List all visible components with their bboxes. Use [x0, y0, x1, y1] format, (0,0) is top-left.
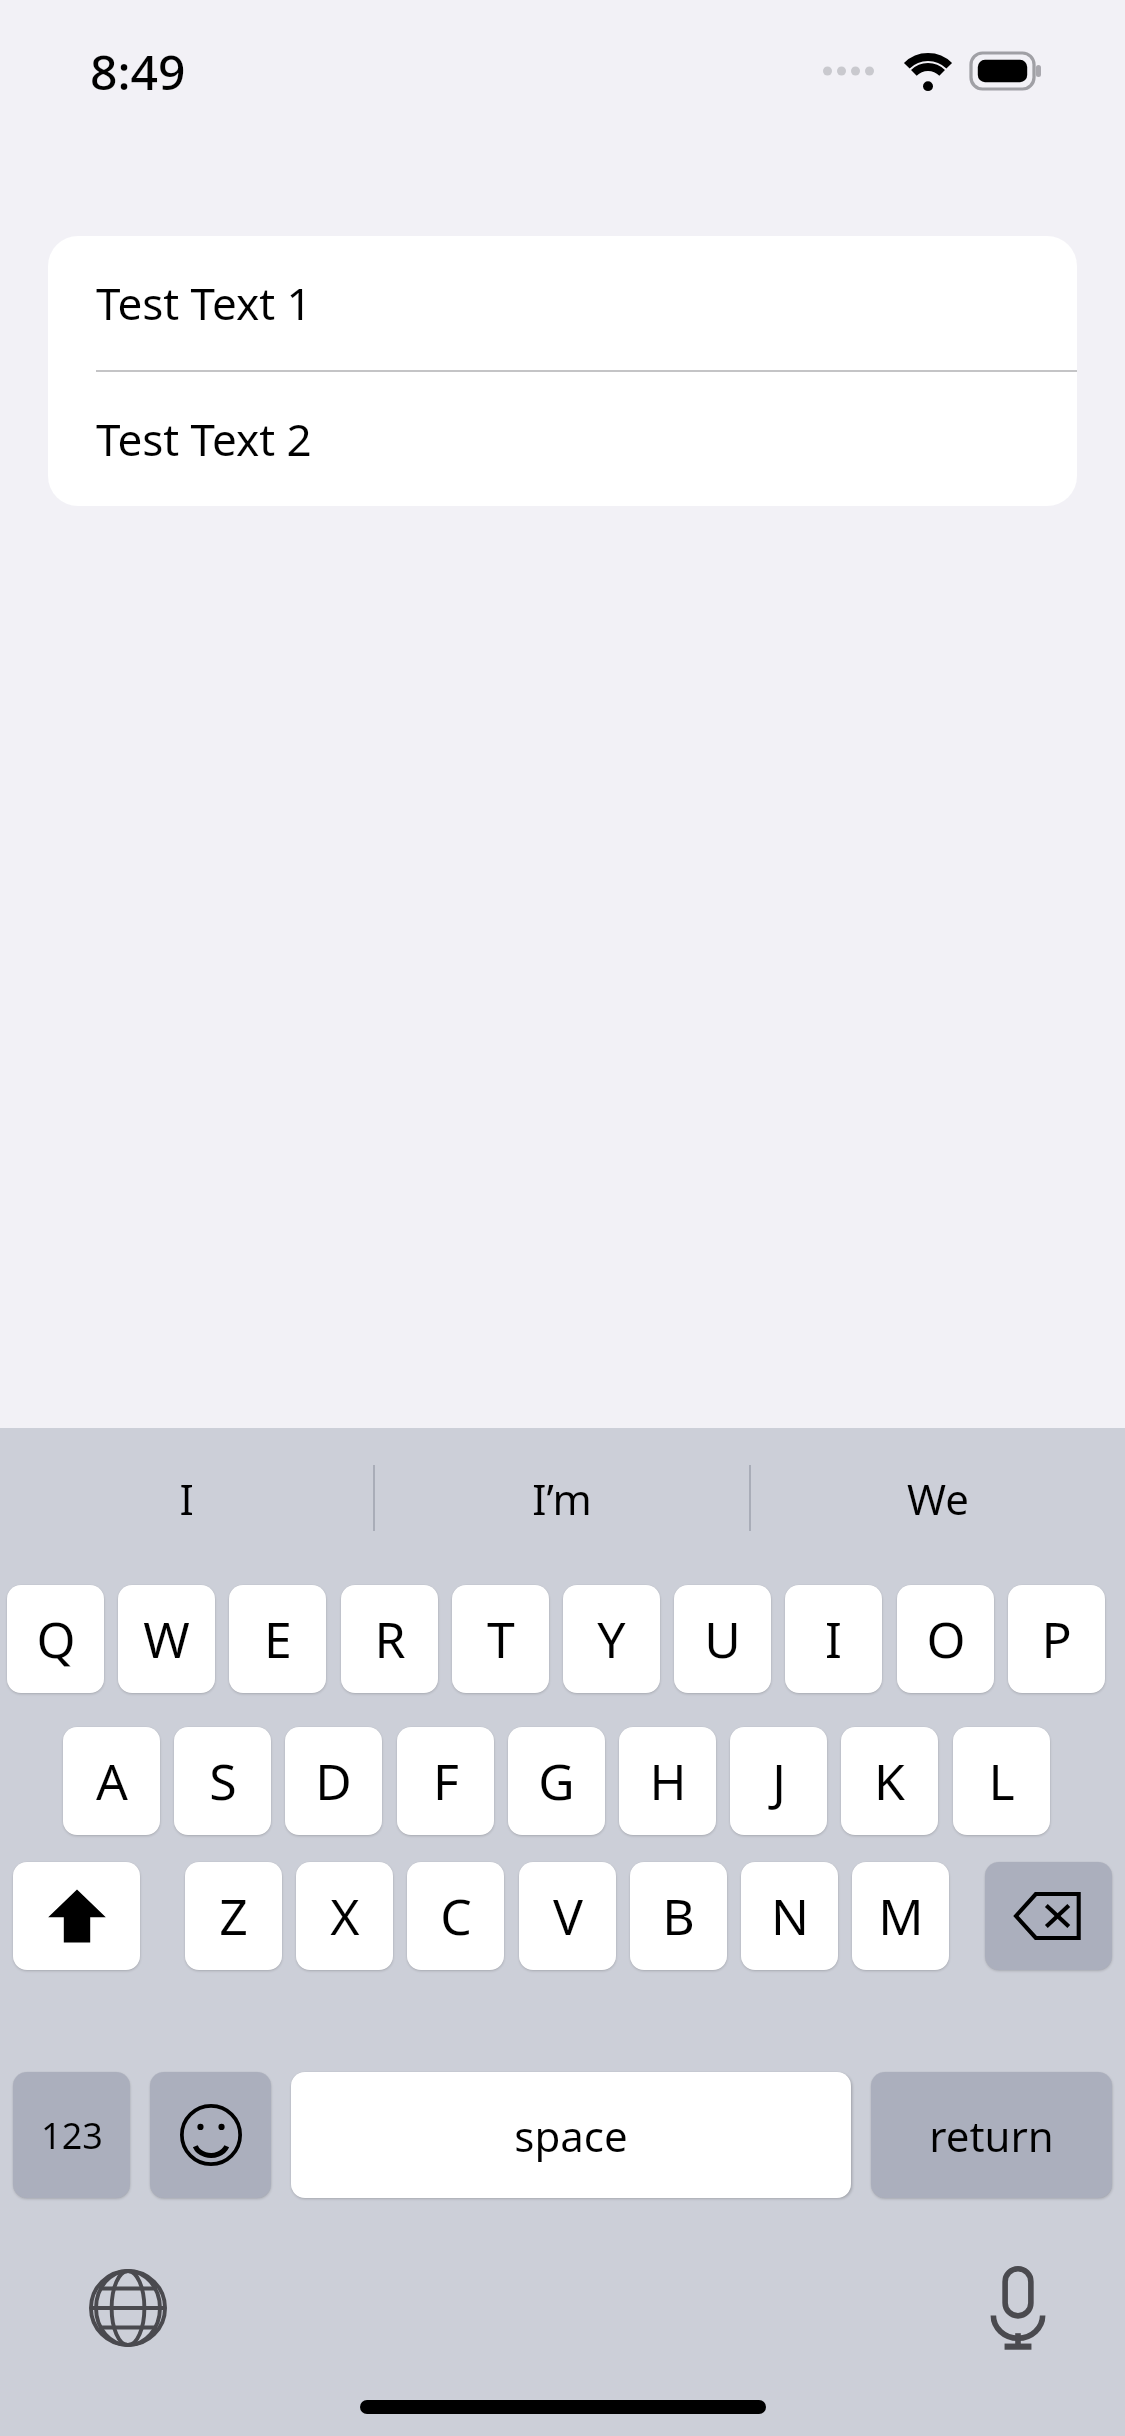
button[interactable]: R: [341, 1585, 438, 1693]
staticText: J: [772, 1747, 786, 1815]
button[interactable]: X: [296, 1862, 393, 1970]
button[interactable]: T: [452, 1585, 549, 1693]
button[interactable]: W: [118, 1585, 215, 1693]
staticText: I: [179, 1470, 194, 1527]
staticText: Q: [36, 1605, 76, 1673]
button[interactable]: Backspace: [985, 1862, 1112, 1970]
button[interactable]: N: [741, 1862, 838, 1970]
button[interactable]: I’m: [375, 1428, 749, 1568]
staticText: Test Text 2: [96, 409, 312, 469]
button[interactable]: U: [674, 1585, 771, 1693]
button[interactable]: Change keyboard language: [70, 2250, 186, 2366]
staticText: H: [649, 1747, 687, 1815]
button[interactable]: Z: [185, 1862, 282, 1970]
staticText: A: [96, 1747, 128, 1815]
staticText: E: [264, 1605, 292, 1673]
staticText: 123: [41, 2111, 103, 2160]
staticText: F: [433, 1747, 459, 1815]
staticText: U: [704, 1605, 741, 1673]
button[interactable]: Dictation: [960, 2250, 1076, 2366]
staticText: P: [1041, 1605, 1072, 1673]
button[interactable]: space: [291, 2072, 851, 2198]
button[interactable]: C: [407, 1862, 504, 1970]
button[interactable]: E: [229, 1585, 326, 1693]
button[interactable]: We: [751, 1428, 1125, 1568]
button[interactable]: O: [897, 1585, 994, 1693]
staticText: C: [440, 1882, 472, 1950]
staticText: I’m: [532, 1470, 592, 1527]
staticText: N: [771, 1882, 809, 1950]
staticText: X: [330, 1882, 360, 1950]
button[interactable]: S: [174, 1727, 271, 1835]
staticText: T: [487, 1605, 515, 1673]
button[interactable]: K: [841, 1727, 938, 1835]
button[interactable]: Shift: [13, 1862, 140, 1970]
button[interactable]: B: [630, 1862, 727, 1970]
staticText: B: [662, 1882, 695, 1950]
staticText: return: [929, 2107, 1054, 2164]
button[interactable]: H: [619, 1727, 716, 1835]
staticText: O: [926, 1605, 966, 1673]
staticText: V: [553, 1882, 583, 1950]
staticText: Y: [597, 1605, 626, 1673]
button[interactable]: Y: [563, 1585, 660, 1693]
button[interactable]: F: [397, 1727, 494, 1835]
button[interactable]: J: [730, 1727, 827, 1835]
button[interactable]: P: [1008, 1585, 1105, 1693]
staticText: M: [878, 1882, 924, 1950]
button[interactable]: D: [285, 1727, 382, 1835]
staticText: space: [514, 2107, 628, 2164]
staticText: Z: [219, 1882, 248, 1950]
button[interactable]: I: [785, 1585, 882, 1693]
button[interactable]: 123: [13, 2072, 130, 2198]
button[interactable]: A: [63, 1727, 160, 1835]
staticText: G: [538, 1747, 575, 1815]
staticText: W: [143, 1605, 190, 1673]
button[interactable]: V: [519, 1862, 616, 1970]
button[interactable]: Emoji: [150, 2072, 271, 2198]
staticText: S: [209, 1747, 237, 1815]
button[interactable]: G: [508, 1727, 605, 1835]
button[interactable]: M: [852, 1862, 949, 1970]
staticText: D: [315, 1747, 352, 1815]
staticText: L: [988, 1747, 1015, 1815]
staticText: R: [374, 1605, 406, 1673]
button[interactable]: Test Text 1: [48, 236, 1077, 370]
staticText: We: [907, 1470, 969, 1527]
button[interactable]: L: [953, 1727, 1050, 1835]
button[interactable]: Test Text 2: [48, 372, 1077, 506]
button[interactable]: return: [871, 2072, 1112, 2198]
staticText: Test Text 1: [96, 273, 312, 333]
staticText: 8:49: [90, 39, 186, 104]
button[interactable]: Q: [7, 1585, 104, 1693]
staticText: I: [825, 1605, 842, 1673]
staticText: K: [874, 1747, 905, 1815]
button[interactable]: I: [0, 1428, 373, 1568]
